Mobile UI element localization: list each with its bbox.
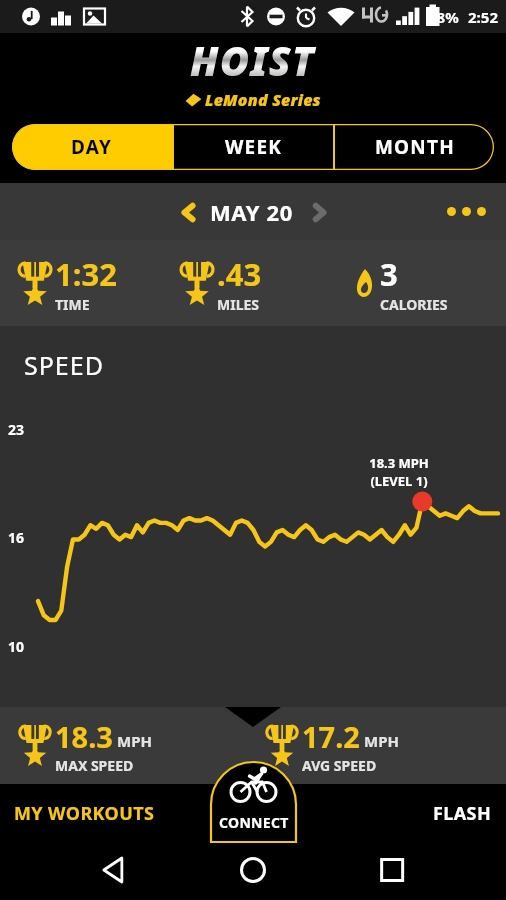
staticText: MY WORKOUTS [14, 801, 155, 826]
staticText: 2:52 [468, 7, 498, 27]
button[interactable]: WEEK [174, 124, 333, 170]
staticText: WEEK [225, 134, 283, 160]
staticText: 3 [380, 253, 398, 295]
staticText: .43 [217, 253, 262, 295]
staticText: (LEVEL 1) [370, 472, 428, 490]
staticText: MAX SPEED [55, 756, 134, 775]
staticText: TIME [55, 295, 90, 314]
staticText: CALORIES [380, 295, 448, 314]
button[interactable]: DAY [12, 124, 172, 170]
button[interactable]: MONTH [335, 124, 494, 170]
staticText: CONNECT [219, 813, 289, 832]
button[interactable]: 1:32 [0, 240, 168, 326]
staticText: AVG SPEED [302, 756, 377, 775]
staticText: SPEED [24, 348, 104, 382]
button[interactable]: Connect [211, 762, 296, 842]
button[interactable]: 3 [337, 240, 506, 326]
staticText: 16 [8, 528, 25, 547]
button[interactable]: 18.3 [0, 707, 253, 784]
button[interactable]: MY WORKOUTS [6, 791, 163, 836]
staticText: FLASH [433, 801, 492, 826]
staticText: 23 [8, 420, 25, 439]
staticText: DAY [71, 134, 113, 160]
button[interactable]: .43 [168, 240, 337, 326]
staticText: 1:32 [55, 253, 117, 295]
button[interactable]: Next day [301, 194, 337, 230]
staticText: 18.3 MPH [369, 454, 429, 472]
button[interactable]: FLASH [425, 791, 500, 836]
staticText: MPH [364, 731, 399, 751]
staticText: MONTH [375, 134, 455, 160]
staticText: 10 [8, 637, 25, 656]
staticText: LeMond Series [205, 89, 321, 111]
button[interactable]: 17.2 [253, 707, 506, 784]
staticText: MILES [217, 295, 260, 314]
staticText: HOIST [190, 33, 316, 87]
staticText: 17.2 [302, 717, 360, 756]
button[interactable]: More options [439, 197, 494, 226]
staticText: MAY 20 [210, 197, 293, 227]
staticText: MPH [117, 731, 152, 751]
staticText: 18.3 [55, 717, 113, 756]
staticText: 88% [428, 7, 459, 27]
button[interactable]: Previous day [170, 194, 206, 230]
